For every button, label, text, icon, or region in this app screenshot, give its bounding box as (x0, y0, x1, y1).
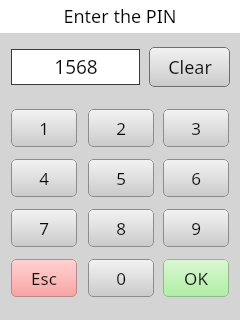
staticText: 6 (191, 167, 201, 190)
staticText: 3 (191, 117, 201, 140)
staticText: 1 (39, 117, 49, 140)
staticText: 9 (191, 217, 201, 240)
staticText: 5 (116, 167, 126, 190)
button[interactable]: Esc (11, 259, 77, 297)
staticText: Clear (168, 55, 212, 80)
button[interactable]: 0 (88, 259, 154, 297)
button[interactable]: 8 (88, 209, 154, 247)
button[interactable]: 4 (11, 159, 77, 197)
staticText: 8 (116, 217, 126, 240)
button[interactable]: 2 (88, 109, 154, 147)
button[interactable]: OK (163, 259, 229, 297)
staticText: Esc (31, 267, 57, 290)
staticText: 0 (116, 267, 126, 290)
button[interactable]: Clear (149, 47, 230, 87)
button[interactable]: 9 (163, 209, 229, 247)
staticText: 1568 (54, 54, 98, 80)
button[interactable]: 6 (163, 159, 229, 197)
staticText: 7 (39, 217, 49, 240)
button[interactable]: 1568 (11, 49, 140, 85)
staticText: OK (184, 267, 208, 290)
staticText: 4 (39, 167, 49, 190)
button[interactable]: 7 (11, 209, 77, 247)
button[interactable]: 3 (163, 109, 229, 147)
button[interactable]: 1 (11, 109, 77, 147)
staticText: Enter the PIN (63, 4, 177, 29)
button[interactable]: 5 (88, 159, 154, 197)
staticText: 2 (116, 117, 126, 140)
